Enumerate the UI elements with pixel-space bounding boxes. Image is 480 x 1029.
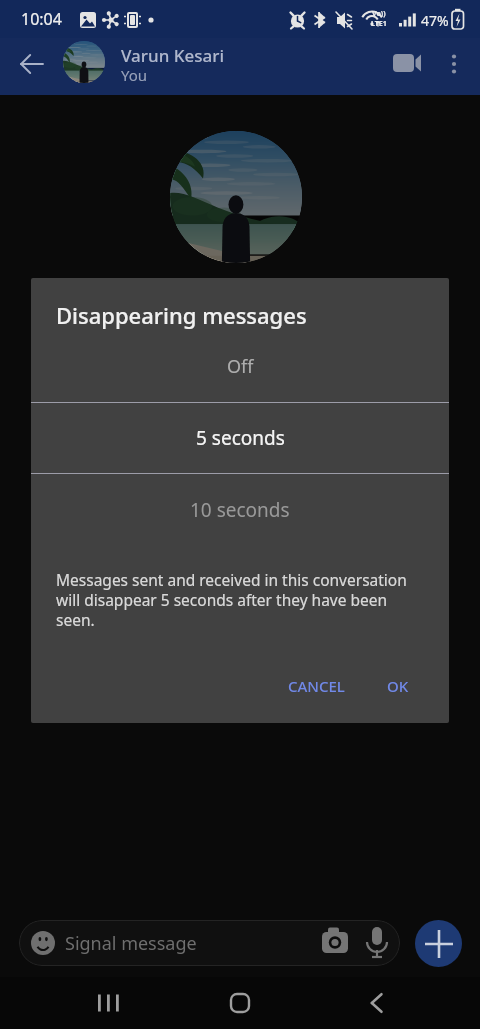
staticText: CANCEL bbox=[288, 676, 345, 696]
button[interactable]: Off bbox=[31, 339, 449, 393]
staticText: Disappearing messages bbox=[56, 300, 307, 330]
button[interactable]: 5 seconds bbox=[31, 403, 449, 473]
staticText: Off bbox=[227, 354, 254, 379]
staticText: Messages sent and received in this conve… bbox=[56, 569, 420, 630]
staticText: OK bbox=[387, 676, 409, 696]
button[interactable]: CANCEL bbox=[276, 667, 357, 705]
staticText: You bbox=[121, 65, 148, 85]
button[interactable]: Back bbox=[8, 40, 56, 88]
staticText: 5 seconds bbox=[196, 425, 285, 451]
staticText: 10 seconds bbox=[190, 497, 290, 523]
button[interactable]: Signal message bbox=[19, 920, 400, 966]
staticText: Varun Kesari bbox=[121, 44, 225, 67]
button[interactable]: OK bbox=[375, 667, 421, 705]
button[interactable]: 10 seconds bbox=[31, 482, 449, 538]
button[interactable]: Video call bbox=[383, 39, 431, 87]
button[interactable]: Recent apps bbox=[80, 983, 136, 1023]
button[interactable]: Add attachment bbox=[415, 920, 462, 967]
staticText: Signal message bbox=[65, 931, 197, 956]
button[interactable]: Home bbox=[212, 983, 268, 1023]
button[interactable]: More options bbox=[430, 40, 478, 88]
staticText: 10:04 bbox=[21, 8, 62, 30]
button[interactable]: Back bbox=[348, 983, 404, 1023]
staticText: 47% bbox=[421, 11, 449, 30]
staticText: LTE1 bbox=[371, 19, 387, 29]
staticText: Vo)) bbox=[372, 9, 386, 19]
